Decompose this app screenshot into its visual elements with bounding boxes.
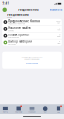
staticText: Начислен кешбэк (8, 26, 30, 30)
staticText: Вчера (55, 20, 60, 22)
staticText: Подробности внутри (8, 23, 25, 25)
staticText: 11:05 (56, 29, 60, 31)
staticText: Почта (3, 111, 8, 113)
staticText: Уведомления (18, 8, 39, 11)
button[interactable]: Платежи (14, 105, 24, 113)
button[interactable]: Платёж принят (2, 32, 62, 39)
button[interactable]: Предложение банка (2, 19, 62, 25)
staticText: Счёт оплачен (8, 37, 19, 38)
staticText: 18:21 (56, 22, 60, 24)
staticText: Выбор категорий (8, 40, 32, 43)
staticText: вт (58, 41, 60, 42)
staticText: чт (58, 27, 60, 29)
button[interactable]: Почта (0, 105, 10, 113)
button[interactable]: Профиль (2, 7, 7, 12)
button[interactable]: Чат (40, 105, 50, 113)
staticText: Платежи (15, 111, 22, 113)
button[interactable]: Изменить (50, 8, 62, 11)
button[interactable]: Начислен кешбэк (2, 26, 62, 32)
staticText: ср (58, 34, 60, 36)
button[interactable]: Ещё (54, 105, 64, 113)
button[interactable]: Главная (27, 105, 37, 113)
staticText: Уведомления (7, 13, 29, 16)
staticText: Предложение банка (8, 19, 40, 23)
staticText: Главная (28, 111, 35, 113)
staticText: 9:41 (3, 2, 10, 5)
staticText: Новые (7, 17, 12, 18)
staticText: 14:02 (56, 42, 60, 44)
staticText: Платёж принят (8, 33, 29, 36)
staticText: До 30 июня (8, 43, 16, 45)
staticText: Изменить (50, 8, 62, 11)
staticText: Чат (44, 111, 47, 113)
staticText: Предыдущие уведомления (21, 56, 42, 58)
button[interactable]: Открыть архив (26, 63, 38, 64)
staticText: 09:48 (56, 36, 60, 37)
staticText: хранятся в архиве (24, 58, 39, 60)
staticText: За июнь (8, 30, 14, 32)
staticText: Открыть архив (26, 63, 38, 64)
staticText: Ещё (57, 111, 60, 113)
button[interactable]: Выбор категорий (2, 39, 62, 46)
